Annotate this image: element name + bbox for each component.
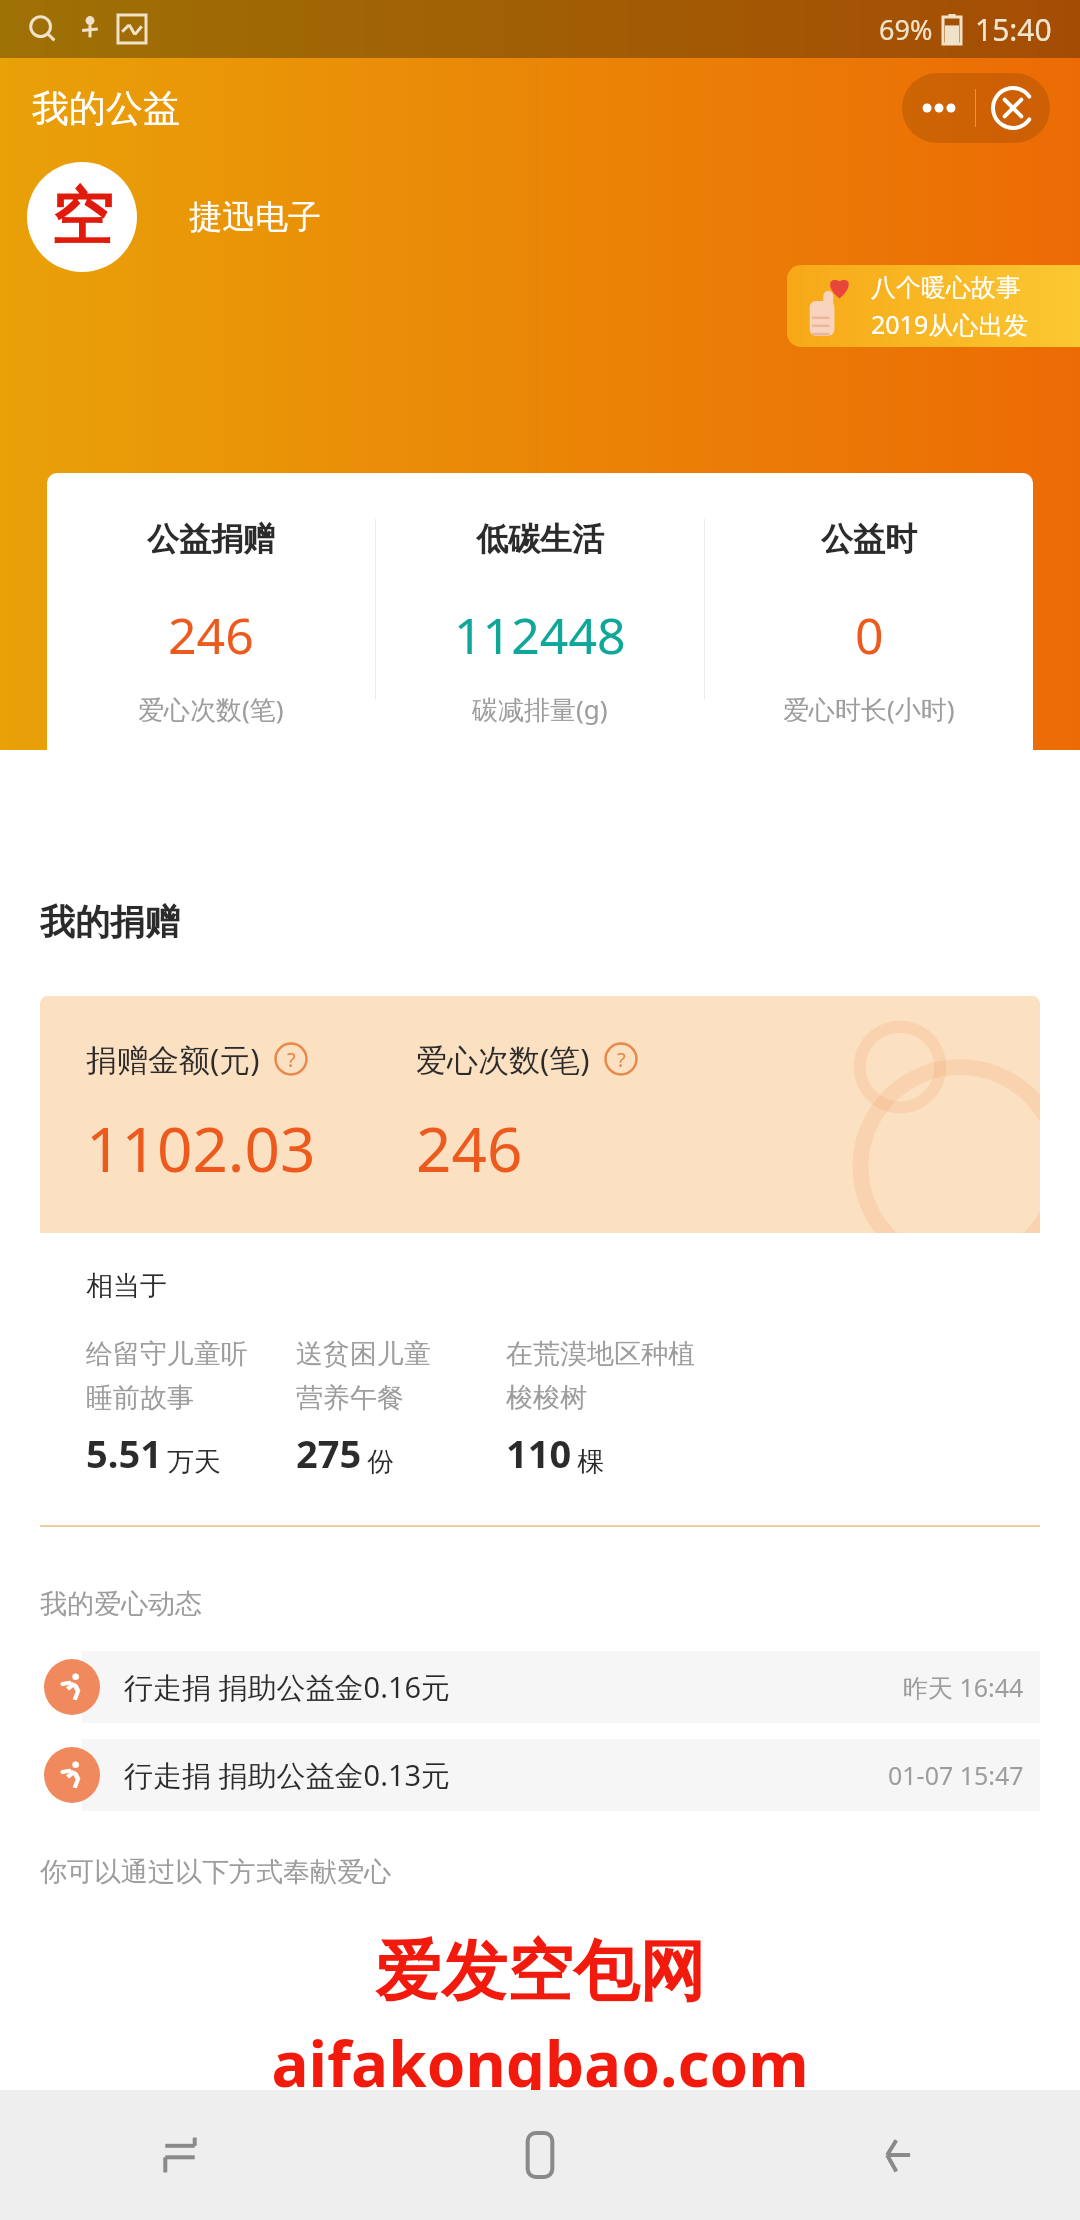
staticText: 行走捐 捐助公益金0.16元 xyxy=(124,1667,451,1707)
staticText: 空 xyxy=(51,178,113,256)
staticText: 110 xyxy=(506,1427,572,1479)
button[interactable]: 捐赠金额(元) xyxy=(40,996,1040,1525)
staticText: 1102.03 xyxy=(86,1106,316,1190)
staticText: 爱心次数(笔) xyxy=(416,1038,590,1080)
staticText: 我的捐赠 xyxy=(40,900,180,944)
button[interactable]: 空 xyxy=(27,162,137,272)
staticText: 我的爱心动态 xyxy=(40,1587,202,1621)
staticText: 2019从心出发 xyxy=(871,307,1029,341)
staticText: 昨天 16:44 xyxy=(903,1670,1024,1704)
staticText: 246 xyxy=(168,601,254,669)
staticText: 份 xyxy=(367,1445,394,1479)
staticText: 0 xyxy=(855,601,884,669)
staticText: 在荒漠地区种植 xyxy=(506,1337,695,1371)
staticText: 5.51 xyxy=(86,1427,162,1479)
staticText: 睡前故事 xyxy=(86,1381,194,1415)
staticText: 行走捐 捐助公益金0.13元 xyxy=(124,1755,451,1795)
button[interactable]: 行走捐 捐助公益金0.13元 xyxy=(0,1739,1080,1811)
staticText: 我的公益 xyxy=(32,85,180,132)
staticText: 捐赠金额(元) xyxy=(86,1038,260,1080)
staticText: 万天 xyxy=(167,1445,221,1479)
staticText: 送贫困儿童 xyxy=(296,1337,431,1371)
staticText: 112448 xyxy=(454,601,626,669)
staticText: 给留守儿童听 xyxy=(86,1337,248,1371)
staticText: 捷迅电子 xyxy=(189,196,321,238)
button[interactable]: Back xyxy=(720,2090,1080,2220)
staticText: 棵 xyxy=(577,1445,604,1479)
staticText: aifakongbao.com xyxy=(271,2021,809,2105)
staticText: 爱发空包网 xyxy=(375,1930,705,2013)
staticText: 爱心次数(笔) xyxy=(138,691,284,727)
staticText: ? xyxy=(287,1046,296,1073)
staticText: 爱心时长(小时) xyxy=(783,691,955,727)
staticText: ? xyxy=(617,1046,626,1073)
button[interactable]: Recents xyxy=(0,2090,360,2220)
staticText: 01-07 15:47 xyxy=(888,1758,1024,1792)
staticText: 相当于 xyxy=(86,1269,167,1303)
button[interactable]: Home xyxy=(360,2090,720,2220)
staticText: 公益时 xyxy=(821,519,917,559)
button[interactable]: More options xyxy=(902,73,975,143)
button[interactable]: Help xyxy=(604,1042,638,1076)
staticText: 营养午餐 xyxy=(296,1381,404,1415)
staticText: 低碳生活 xyxy=(476,519,604,559)
staticText: 碳减排量(g) xyxy=(472,691,608,727)
staticText: 梭梭树 xyxy=(506,1381,587,1415)
staticText: 275 xyxy=(296,1427,362,1479)
button[interactable]: Help xyxy=(274,1042,308,1076)
button[interactable]: More options xyxy=(902,73,1050,143)
staticText: 你可以通过以下方式奉献爱心 xyxy=(40,1855,391,1889)
button[interactable]: Close xyxy=(976,73,1050,143)
staticText: 15:40 xyxy=(975,9,1052,50)
button[interactable]: 八个暖心故事 xyxy=(787,265,1080,347)
staticText: 69% xyxy=(879,11,933,48)
staticText: 八个暖心故事 xyxy=(871,272,1021,303)
staticText: 公益捐赠 xyxy=(147,519,275,559)
staticText: 246 xyxy=(416,1106,523,1190)
button[interactable]: 行走捐 捐助公益金0.16元 xyxy=(0,1651,1080,1723)
